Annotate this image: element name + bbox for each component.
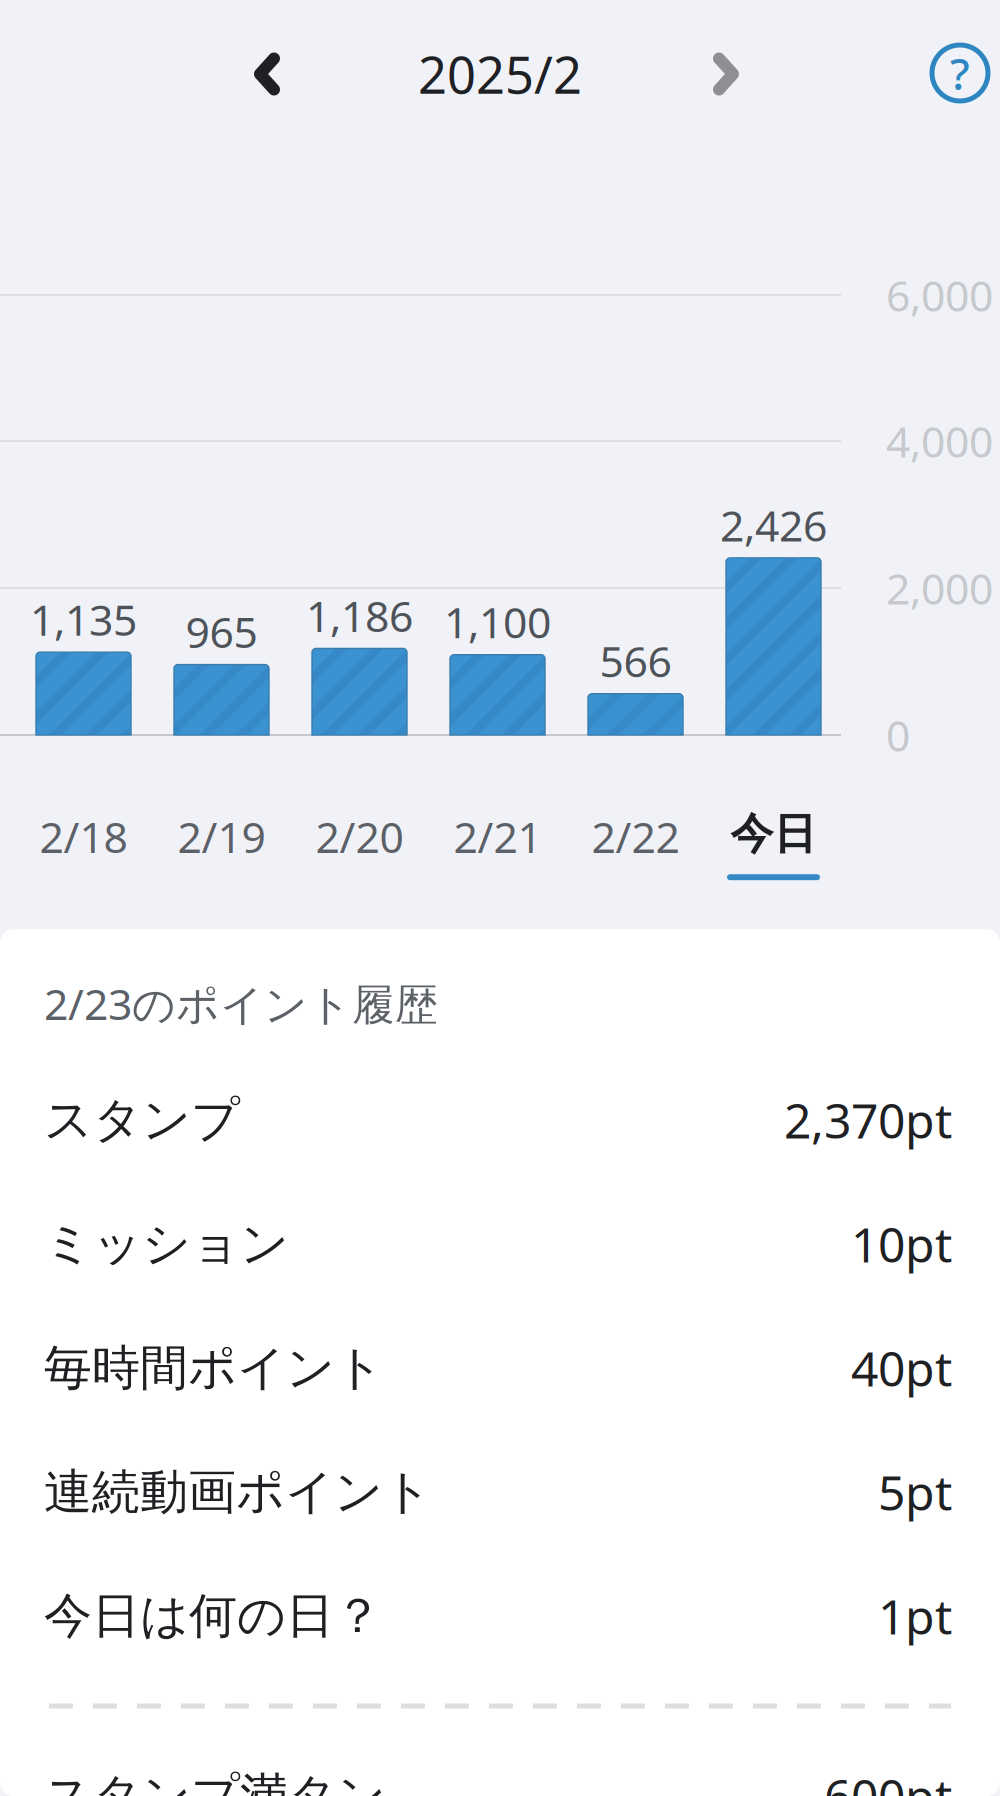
button[interactable]: Help	[932, 45, 988, 101]
button[interactable]: 2/18	[23, 790, 143, 880]
staticText: 1,100	[444, 593, 551, 650]
staticText: 1,186	[306, 587, 413, 644]
staticText: 2/18	[39, 808, 127, 865]
staticText: 連続動画ポイント	[44, 1462, 432, 1521]
button[interactable]: 2/20	[299, 790, 419, 880]
staticText: 1,135	[30, 591, 137, 647]
button[interactable]: スタンプ満タン	[0, 1734, 1000, 1796]
button[interactable]: ミッション	[0, 1182, 1000, 1306]
staticText: ミッション	[44, 1214, 289, 1273]
staticText: 2/23のポイント履歴	[44, 975, 438, 1032]
staticText: 10pt	[851, 1212, 952, 1276]
staticText: スタンプ	[44, 1090, 240, 1149]
button[interactable]: 2/19	[161, 790, 281, 880]
staticText: 2025/2	[418, 40, 582, 108]
staticText: スタンプ満タン	[44, 1766, 386, 1796]
staticText: 2/22	[591, 808, 679, 865]
staticText: 2,426	[720, 497, 827, 553]
button[interactable]: Next month	[680, 22, 772, 126]
staticText: 2,000	[886, 560, 993, 616]
button[interactable]: 2/21	[437, 790, 557, 880]
staticText: 4,000	[886, 413, 993, 469]
button[interactable]: スタンプ	[0, 1058, 1000, 1182]
button[interactable]: Previous month	[221, 22, 313, 126]
button[interactable]: 今日	[713, 790, 833, 880]
staticText: 2,370pt	[784, 1088, 952, 1152]
staticText: 1pt	[878, 1584, 952, 1648]
staticText: 600pt	[824, 1764, 952, 1796]
staticText: 2/21	[453, 808, 541, 865]
staticText: 0	[886, 707, 910, 763]
staticText: 毎時間ポイント	[44, 1338, 384, 1397]
staticText: 2/19	[177, 808, 265, 865]
button[interactable]: 今日は何の日？	[0, 1554, 1000, 1678]
staticText: ?	[950, 44, 970, 102]
staticText: 5pt	[878, 1460, 952, 1524]
staticText: 今日	[730, 808, 816, 860]
staticText: 2/20	[315, 808, 403, 865]
button[interactable]: 毎時間ポイント	[0, 1306, 1000, 1430]
button[interactable]: 2/22	[575, 790, 695, 880]
staticText: 965	[185, 603, 257, 660]
staticText: 566	[599, 632, 671, 689]
staticText: 今日は何の日？	[44, 1586, 382, 1645]
staticText: 6,000	[886, 267, 993, 323]
staticText: 40pt	[851, 1336, 952, 1400]
button[interactable]: 連続動画ポイント	[0, 1430, 1000, 1554]
